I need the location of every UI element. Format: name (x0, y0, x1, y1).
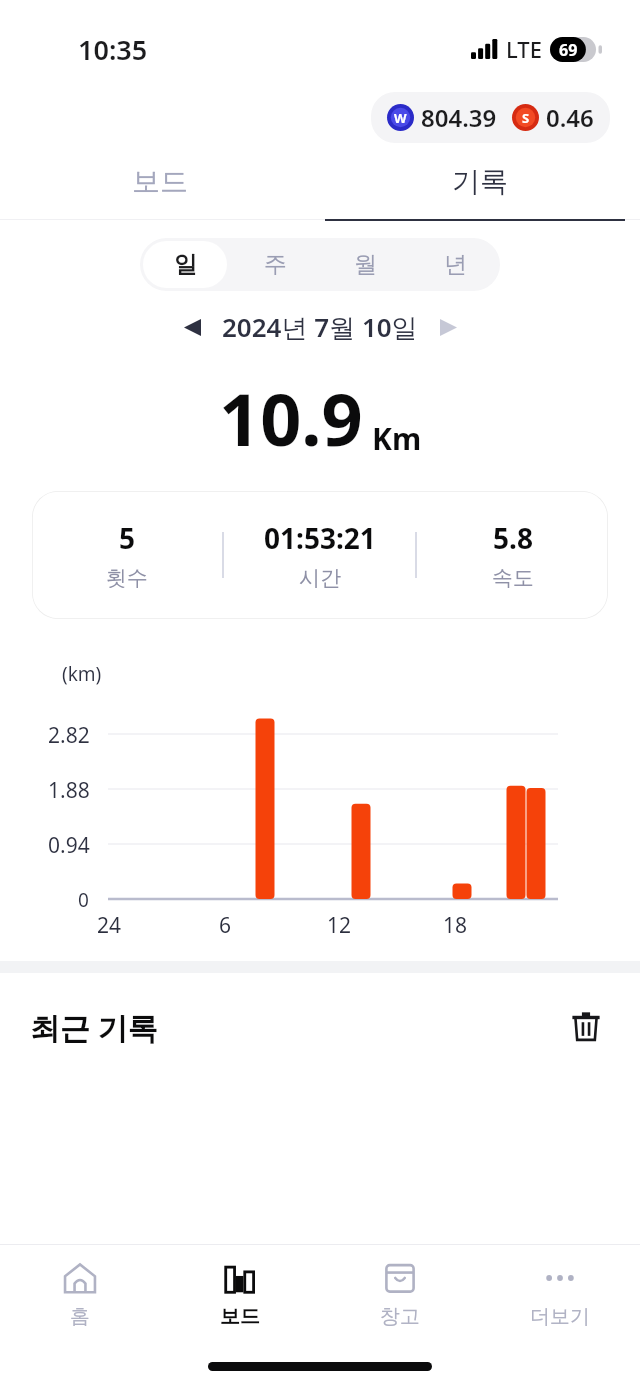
staticText: 10.9 (219, 369, 363, 467)
staticText: 더보기 (530, 1304, 590, 1329)
staticText: 69 (559, 39, 578, 61)
button[interactable]: 보드 (160, 1245, 320, 1345)
staticText: 0.94 (48, 831, 90, 860)
staticText: 횟수 (106, 565, 148, 591)
button[interactable]: W (371, 92, 610, 143)
staticText: 기록 (452, 164, 508, 199)
staticText: 5 (119, 519, 136, 557)
staticText: W (394, 109, 407, 127)
staticText: 24 (97, 911, 122, 939)
staticText: 1.88 (48, 776, 90, 805)
staticText: 창고 (380, 1304, 420, 1329)
staticText: 0.46 (546, 101, 594, 134)
button[interactable]: 더보기 (480, 1245, 640, 1345)
staticText: 주 (264, 250, 287, 279)
staticText: S (522, 109, 530, 127)
staticText: 시간 (299, 565, 341, 591)
staticText: 804.39 (421, 101, 497, 134)
staticText: 18 (443, 911, 468, 939)
button[interactable]: 창고 (320, 1245, 480, 1345)
button[interactable]: 보드 (0, 143, 320, 219)
staticText: 2.82 (48, 721, 90, 750)
staticText: 속도 (492, 565, 534, 591)
staticText: 홈 (70, 1304, 90, 1329)
staticText: 보드 (220, 1304, 260, 1329)
staticText: 5.8 (493, 519, 533, 557)
staticText: 12 (327, 911, 352, 939)
staticText: 년 (444, 250, 467, 279)
staticText: 10:35 (78, 31, 148, 68)
button[interactable]: 일 (143, 241, 227, 288)
button[interactable]: 기록 (320, 143, 640, 219)
button[interactable]: 년 (413, 241, 497, 288)
staticText: 최근 기록 (30, 1007, 158, 1048)
staticText: Km (372, 418, 422, 459)
button[interactable]: 5 (32, 491, 608, 619)
staticText: 월 (354, 250, 377, 279)
staticText: 보드 (132, 164, 188, 199)
button[interactable]: 월 (323, 241, 407, 288)
button[interactable]: 홈 (0, 1245, 160, 1345)
button[interactable]: 주 (233, 241, 317, 288)
staticText: 0 (78, 887, 89, 913)
staticText: 2024년 7월 10일 (222, 309, 418, 345)
button[interactable]: Delete records (562, 1003, 610, 1051)
staticText: 6 (219, 911, 232, 939)
button[interactable]: Next day (426, 305, 470, 349)
staticText: 일 (174, 250, 197, 279)
staticText: 01:53:21 (264, 519, 376, 557)
staticText: LTE (506, 34, 542, 64)
staticText: (km) (62, 661, 102, 687)
button[interactable]: Previous day (170, 305, 214, 349)
